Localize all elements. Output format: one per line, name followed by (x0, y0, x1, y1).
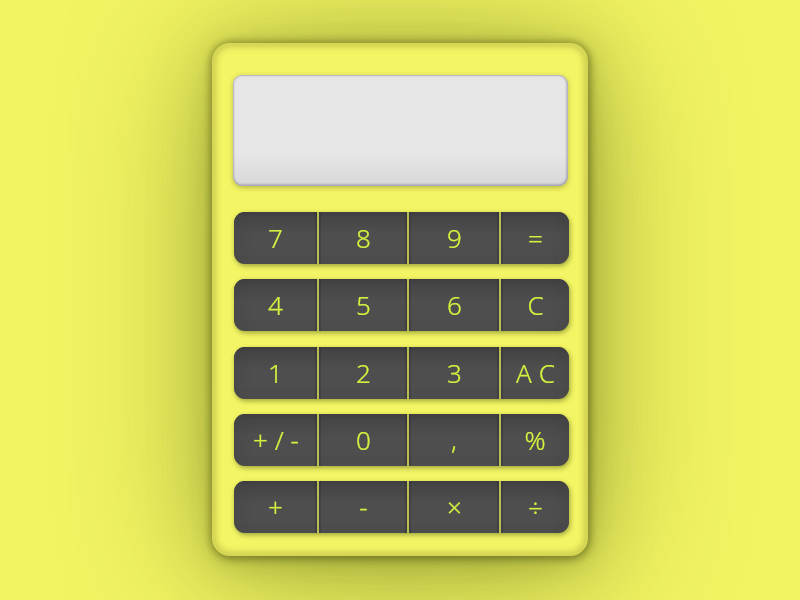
button[interactable]: , (409, 414, 499, 466)
staticText: C (527, 287, 544, 322)
button[interactable]: 7 (234, 212, 317, 264)
staticText: × (447, 489, 462, 524)
button[interactable]: + / - (234, 414, 317, 466)
staticText: - (359, 489, 368, 524)
button[interactable]: 6 (409, 279, 499, 331)
button[interactable]: 2 (319, 347, 407, 399)
button[interactable]: 0 (319, 414, 407, 466)
button[interactable]: ÷ (501, 481, 569, 533)
staticText: A C (516, 355, 555, 390)
staticText: 6 (447, 287, 462, 322)
staticText: 4 (268, 287, 283, 322)
button[interactable]: 1 (234, 347, 317, 399)
button[interactable]: = (501, 212, 569, 264)
button[interactable]: 3 (409, 347, 499, 399)
staticText: + (268, 489, 283, 524)
staticText: 9 (447, 220, 462, 255)
button[interactable]: 9 (409, 212, 499, 264)
button[interactable]: 8 (319, 212, 407, 264)
button[interactable]: × (409, 481, 499, 533)
button[interactable]: - (319, 481, 407, 533)
staticText: + / - (253, 422, 299, 457)
staticText: , (451, 422, 457, 457)
staticText: 3 (447, 355, 462, 390)
staticText: = (528, 220, 543, 255)
button[interactable]: A C (501, 347, 569, 399)
staticText: % (524, 422, 546, 457)
staticText: ÷ (528, 489, 543, 524)
staticText: 7 (268, 220, 283, 255)
button[interactable]: + (234, 481, 317, 533)
staticText: 2 (356, 355, 371, 390)
button[interactable]: % (501, 414, 569, 466)
staticText: 1 (268, 355, 283, 390)
button[interactable]: C (501, 279, 569, 331)
button[interactable]: 5 (319, 279, 407, 331)
staticText: 0 (356, 422, 371, 457)
button[interactable]: 4 (234, 279, 317, 331)
staticText: 8 (356, 220, 371, 255)
staticText: 5 (356, 287, 371, 322)
